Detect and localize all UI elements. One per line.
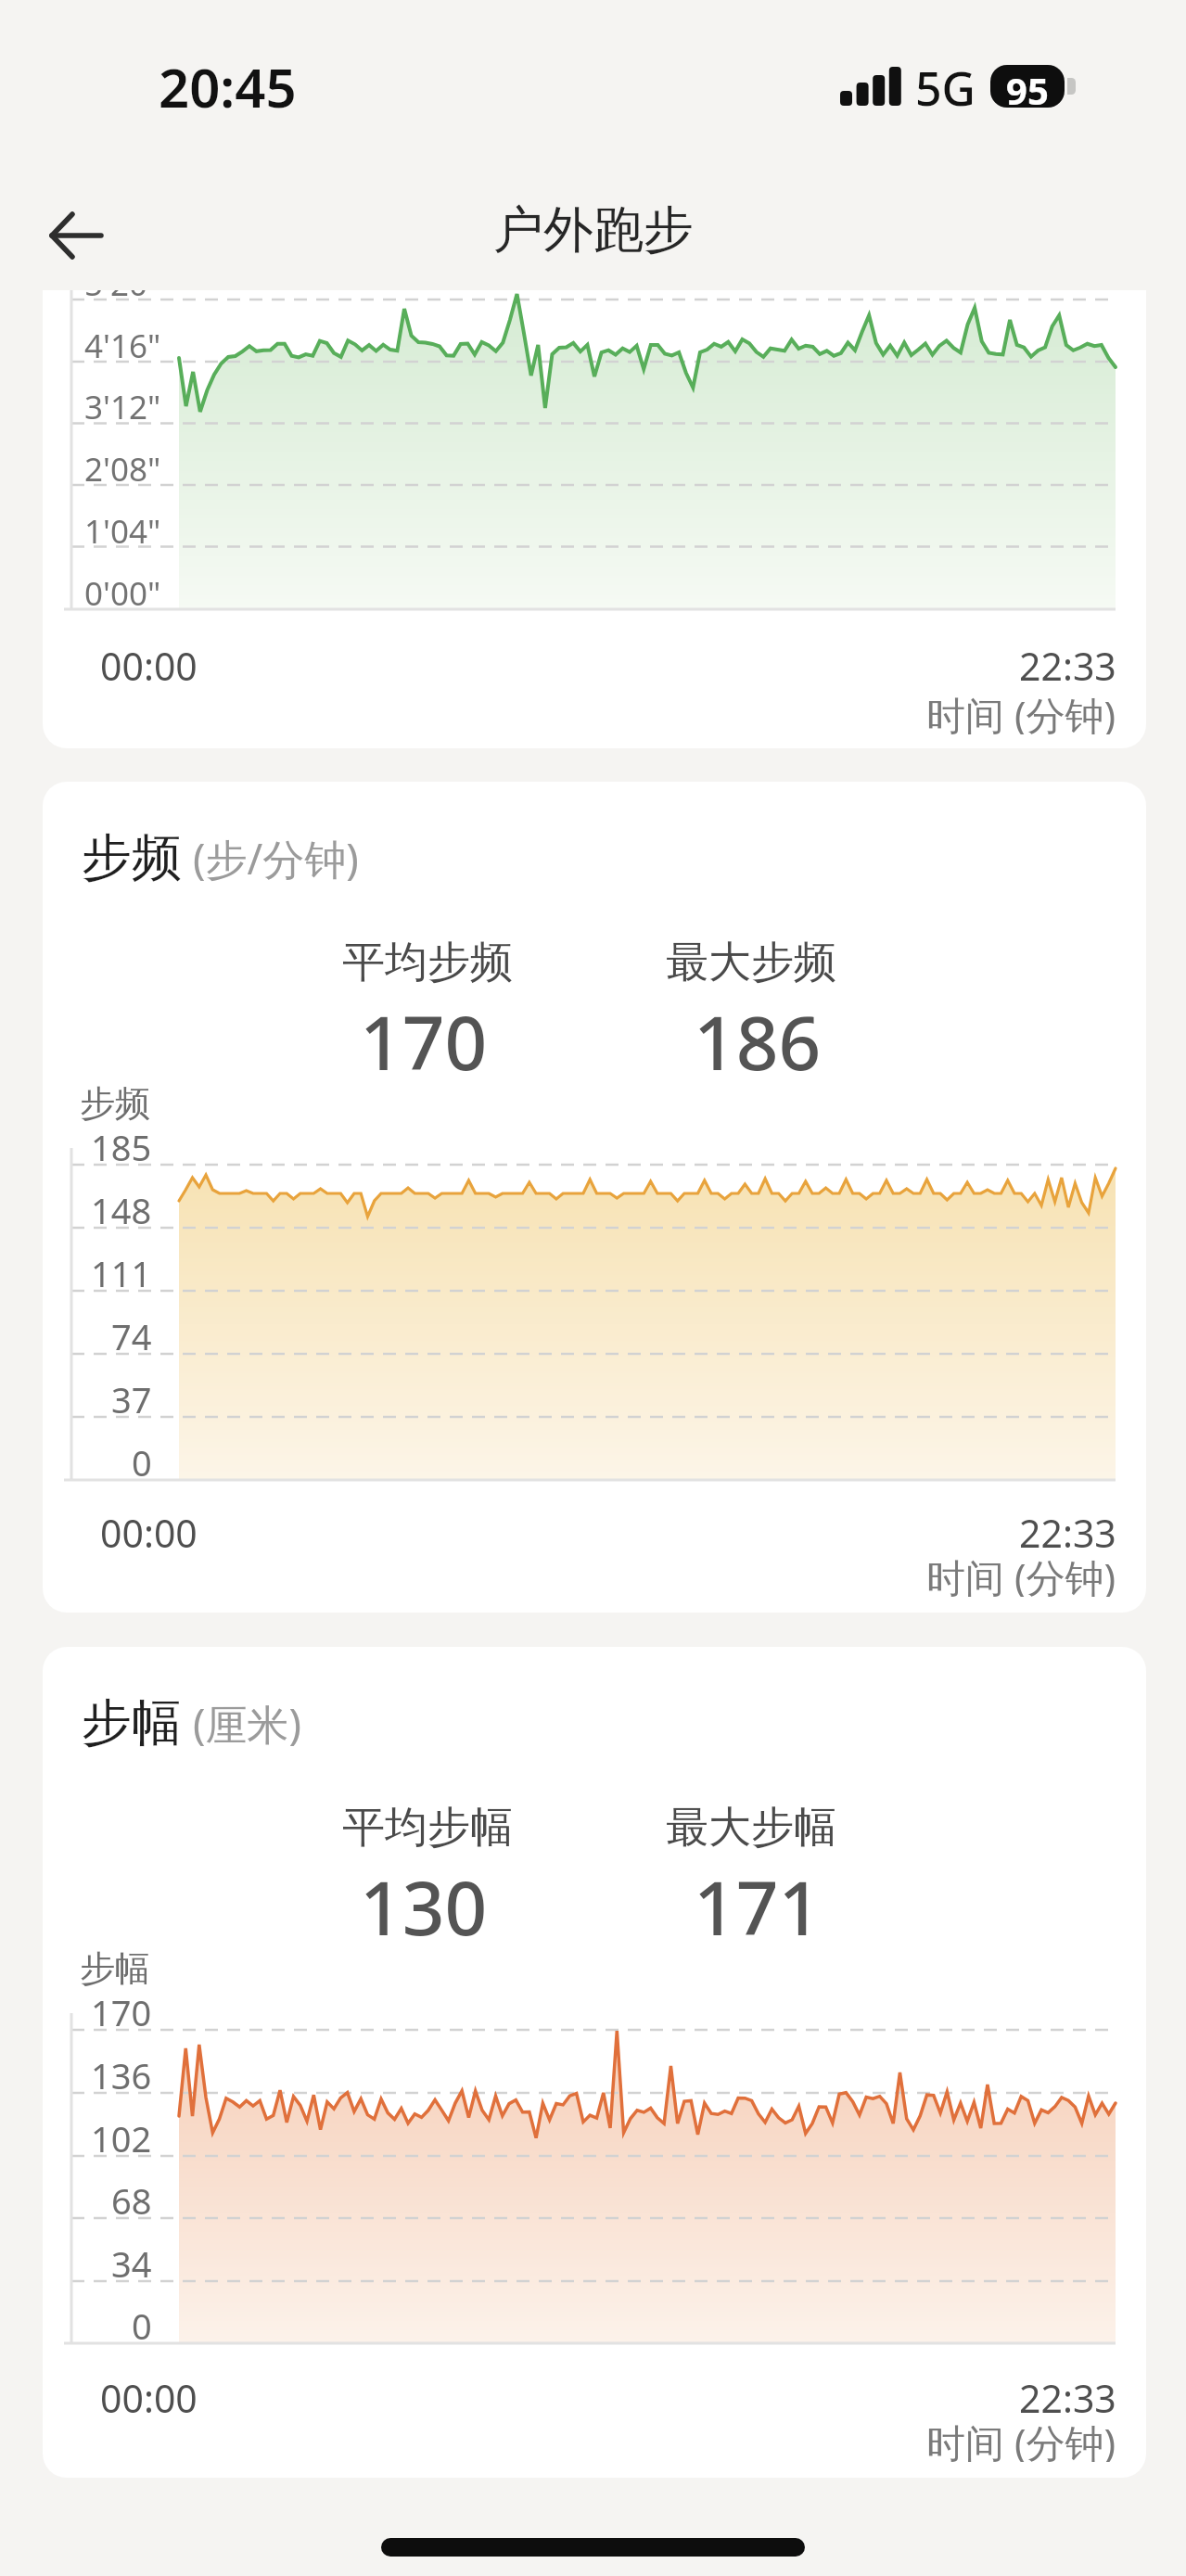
staticText: 时间 (分钟): [926, 1550, 1116, 1597]
staticText: 3'12": [84, 385, 161, 429]
staticText: 171: [694, 1855, 822, 1952]
button[interactable]: [33, 202, 119, 269]
staticText: 136: [91, 2051, 152, 2096]
staticText: 步幅: [80, 1946, 150, 1991]
staticText: 20:45: [159, 50, 297, 115]
staticText: 步频: [82, 826, 182, 889]
staticText: 148: [91, 1186, 152, 1231]
staticText: 00:00: [100, 640, 198, 686]
staticText: 0: [132, 1438, 152, 1483]
staticText: 37: [111, 1375, 152, 1420]
staticText: 0'00": [84, 571, 161, 616]
staticText: 2'08": [84, 447, 161, 491]
staticText: 185: [91, 1123, 152, 1167]
staticText: 平均步幅: [342, 1801, 513, 1855]
staticText: 5G: [915, 57, 976, 114]
staticText: 步频: [80, 1081, 150, 1126]
staticText: 4'16": [84, 324, 161, 368]
staticText: 74: [111, 1312, 152, 1357]
staticText: 最大步频: [666, 936, 836, 989]
staticText: 户外跑步: [493, 198, 694, 261]
staticText: 170: [360, 990, 488, 1087]
staticText: 平均步频: [342, 936, 513, 989]
staticText: 186: [694, 990, 822, 1087]
staticText: 22:33: [1019, 1507, 1116, 1553]
staticText: 1'04": [84, 509, 161, 554]
staticText: 68: [111, 2176, 152, 2221]
staticText: 95: [1006, 65, 1049, 108]
staticText: 0: [132, 2302, 152, 2346]
staticText: 22:33: [1019, 2372, 1116, 2418]
staticText: 步幅: [82, 1691, 182, 1754]
staticText: (步/分钟): [193, 830, 359, 886]
staticText: (厘米): [193, 1695, 302, 1752]
staticText: 111: [91, 1249, 152, 1294]
staticText: 34: [111, 2239, 152, 2284]
staticText: 22:33: [1019, 640, 1116, 686]
staticText: 102: [91, 2114, 152, 2159]
staticText: 时间 (分钟): [926, 688, 1116, 734]
staticText: 最大步幅: [666, 1801, 836, 1855]
staticText: 170: [91, 1988, 152, 2033]
staticText: 00:00: [100, 2372, 198, 2418]
staticText: 00:00: [100, 1507, 198, 1553]
staticText: 时间 (分钟): [926, 2416, 1116, 2462]
staticText: 5'20": [84, 290, 161, 306]
staticText: 130: [360, 1855, 488, 1952]
